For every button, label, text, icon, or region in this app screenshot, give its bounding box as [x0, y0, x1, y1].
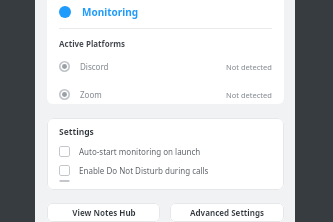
staticText: Auto-start monitoring on launch	[79, 146, 201, 157]
staticText: Zoom	[80, 89, 102, 100]
staticText: Monitoring	[82, 5, 139, 19]
button[interactable]: Discord	[59, 56, 272, 77]
button[interactable]: Enable Do Not Disturb during calls	[59, 161, 272, 180]
button[interactable]: Monitoring	[59, 0, 272, 23]
button[interactable]: Zoom	[59, 85, 272, 104]
staticText: Not detected	[226, 62, 272, 72]
staticText: Enable Do Not Disturb during calls	[79, 165, 209, 176]
staticText: Active Platforms	[59, 38, 126, 49]
staticText: Not detected	[226, 90, 272, 100]
button[interactable]: View Notes Hub	[47, 203, 160, 222]
button[interactable]: Advanced Settings	[170, 203, 284, 222]
button[interactable]: Auto-start monitoring on launch	[59, 142, 272, 161]
staticText: Settings	[59, 126, 94, 138]
staticText: Discord	[80, 61, 109, 72]
staticText: View Notes Hub	[72, 207, 136, 218]
button[interactable]: Save transcripts automatically	[59, 180, 272, 182]
staticText: Advanced Settings	[190, 207, 264, 218]
